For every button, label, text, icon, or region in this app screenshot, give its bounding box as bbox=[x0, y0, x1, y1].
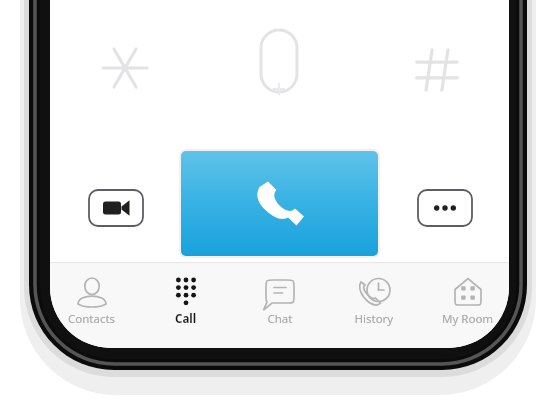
button[interactable]: Call bbox=[181, 151, 378, 256]
button[interactable]: More options bbox=[415, 187, 475, 229]
button[interactable]: Star key bbox=[96, 34, 154, 96]
button[interactable]: My Room bbox=[425, 264, 509, 334]
button[interactable]: Chat bbox=[237, 264, 323, 334]
button[interactable]: History bbox=[331, 264, 417, 334]
button[interactable]: Video call bbox=[86, 187, 146, 229]
button[interactable]: Zero plus key bbox=[250, 28, 308, 98]
button[interactable]: Contacts bbox=[51, 264, 133, 334]
button[interactable]: Pound key bbox=[408, 38, 466, 96]
button[interactable]: Call bbox=[143, 264, 229, 334]
